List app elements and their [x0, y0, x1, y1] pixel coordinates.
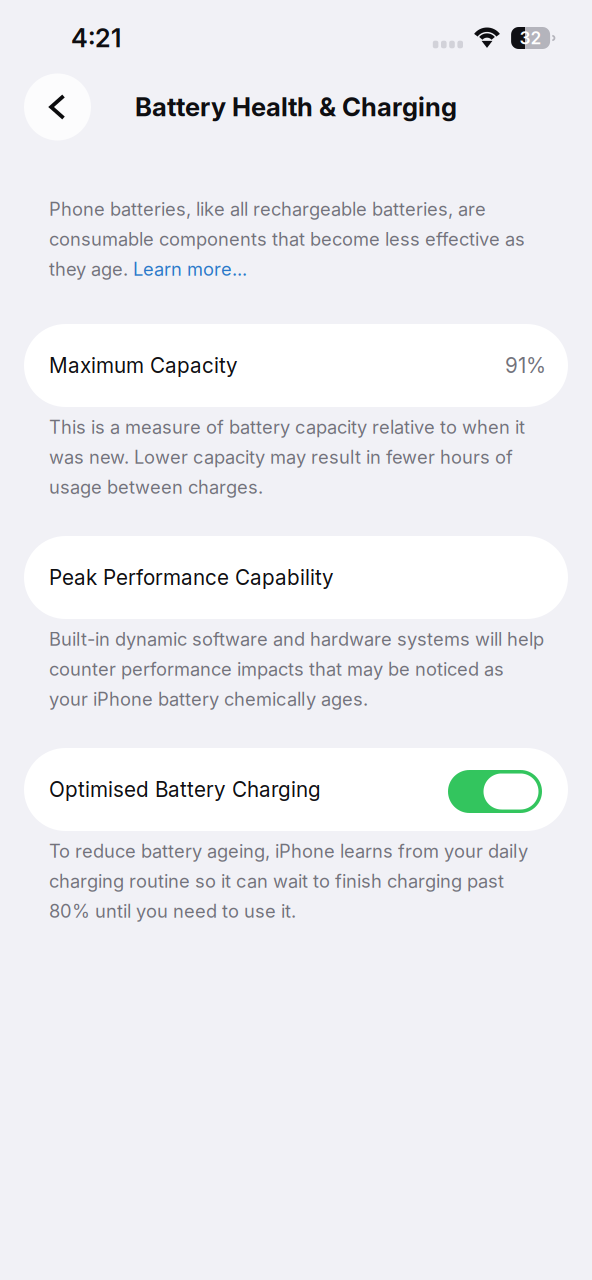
- staticText: Maximum Capacity: [49, 353, 238, 378]
- staticText: Optimised Battery Charging: [49, 777, 321, 802]
- button[interactable]: Back: [24, 73, 91, 140]
- staticText: usage between charges.: [49, 476, 263, 498]
- staticText: To reduce battery ageing, iPhone learns …: [49, 840, 528, 862]
- button[interactable]: Maximum Capacity: [24, 324, 568, 407]
- staticText: Built-in dynamic software and hardware s…: [49, 628, 544, 650]
- staticText: counter performance impacts that may be …: [49, 658, 504, 680]
- button[interactable]: Peak Performance Capability: [24, 536, 568, 619]
- staticText: Phone batteries, like all rechargeable b…: [49, 198, 486, 220]
- button[interactable]: Learn more...: [133, 258, 247, 280]
- staticText: Learn more...: [133, 258, 247, 280]
- staticText: 80% until you need to use it.: [49, 900, 296, 922]
- staticText: 32: [520, 27, 542, 48]
- staticText: your iPhone battery chemically ages.: [49, 688, 368, 710]
- staticText: they age.: [49, 258, 133, 280]
- staticText: Peak Performance Capability: [49, 565, 334, 590]
- staticText: 4:21: [71, 23, 121, 53]
- staticText: 91%: [505, 353, 546, 378]
- staticText: consumable components that become less e…: [49, 228, 525, 250]
- staticText: This is a measure of battery capacity re…: [49, 416, 525, 438]
- staticText: was new. Lower capacity may result in fe…: [49, 446, 513, 468]
- staticText: Battery Health & Charging: [135, 91, 457, 122]
- staticText: charging routine so it can wait to finis…: [49, 870, 504, 892]
- button[interactable]: Optimised Battery Charging: [448, 766, 542, 813]
